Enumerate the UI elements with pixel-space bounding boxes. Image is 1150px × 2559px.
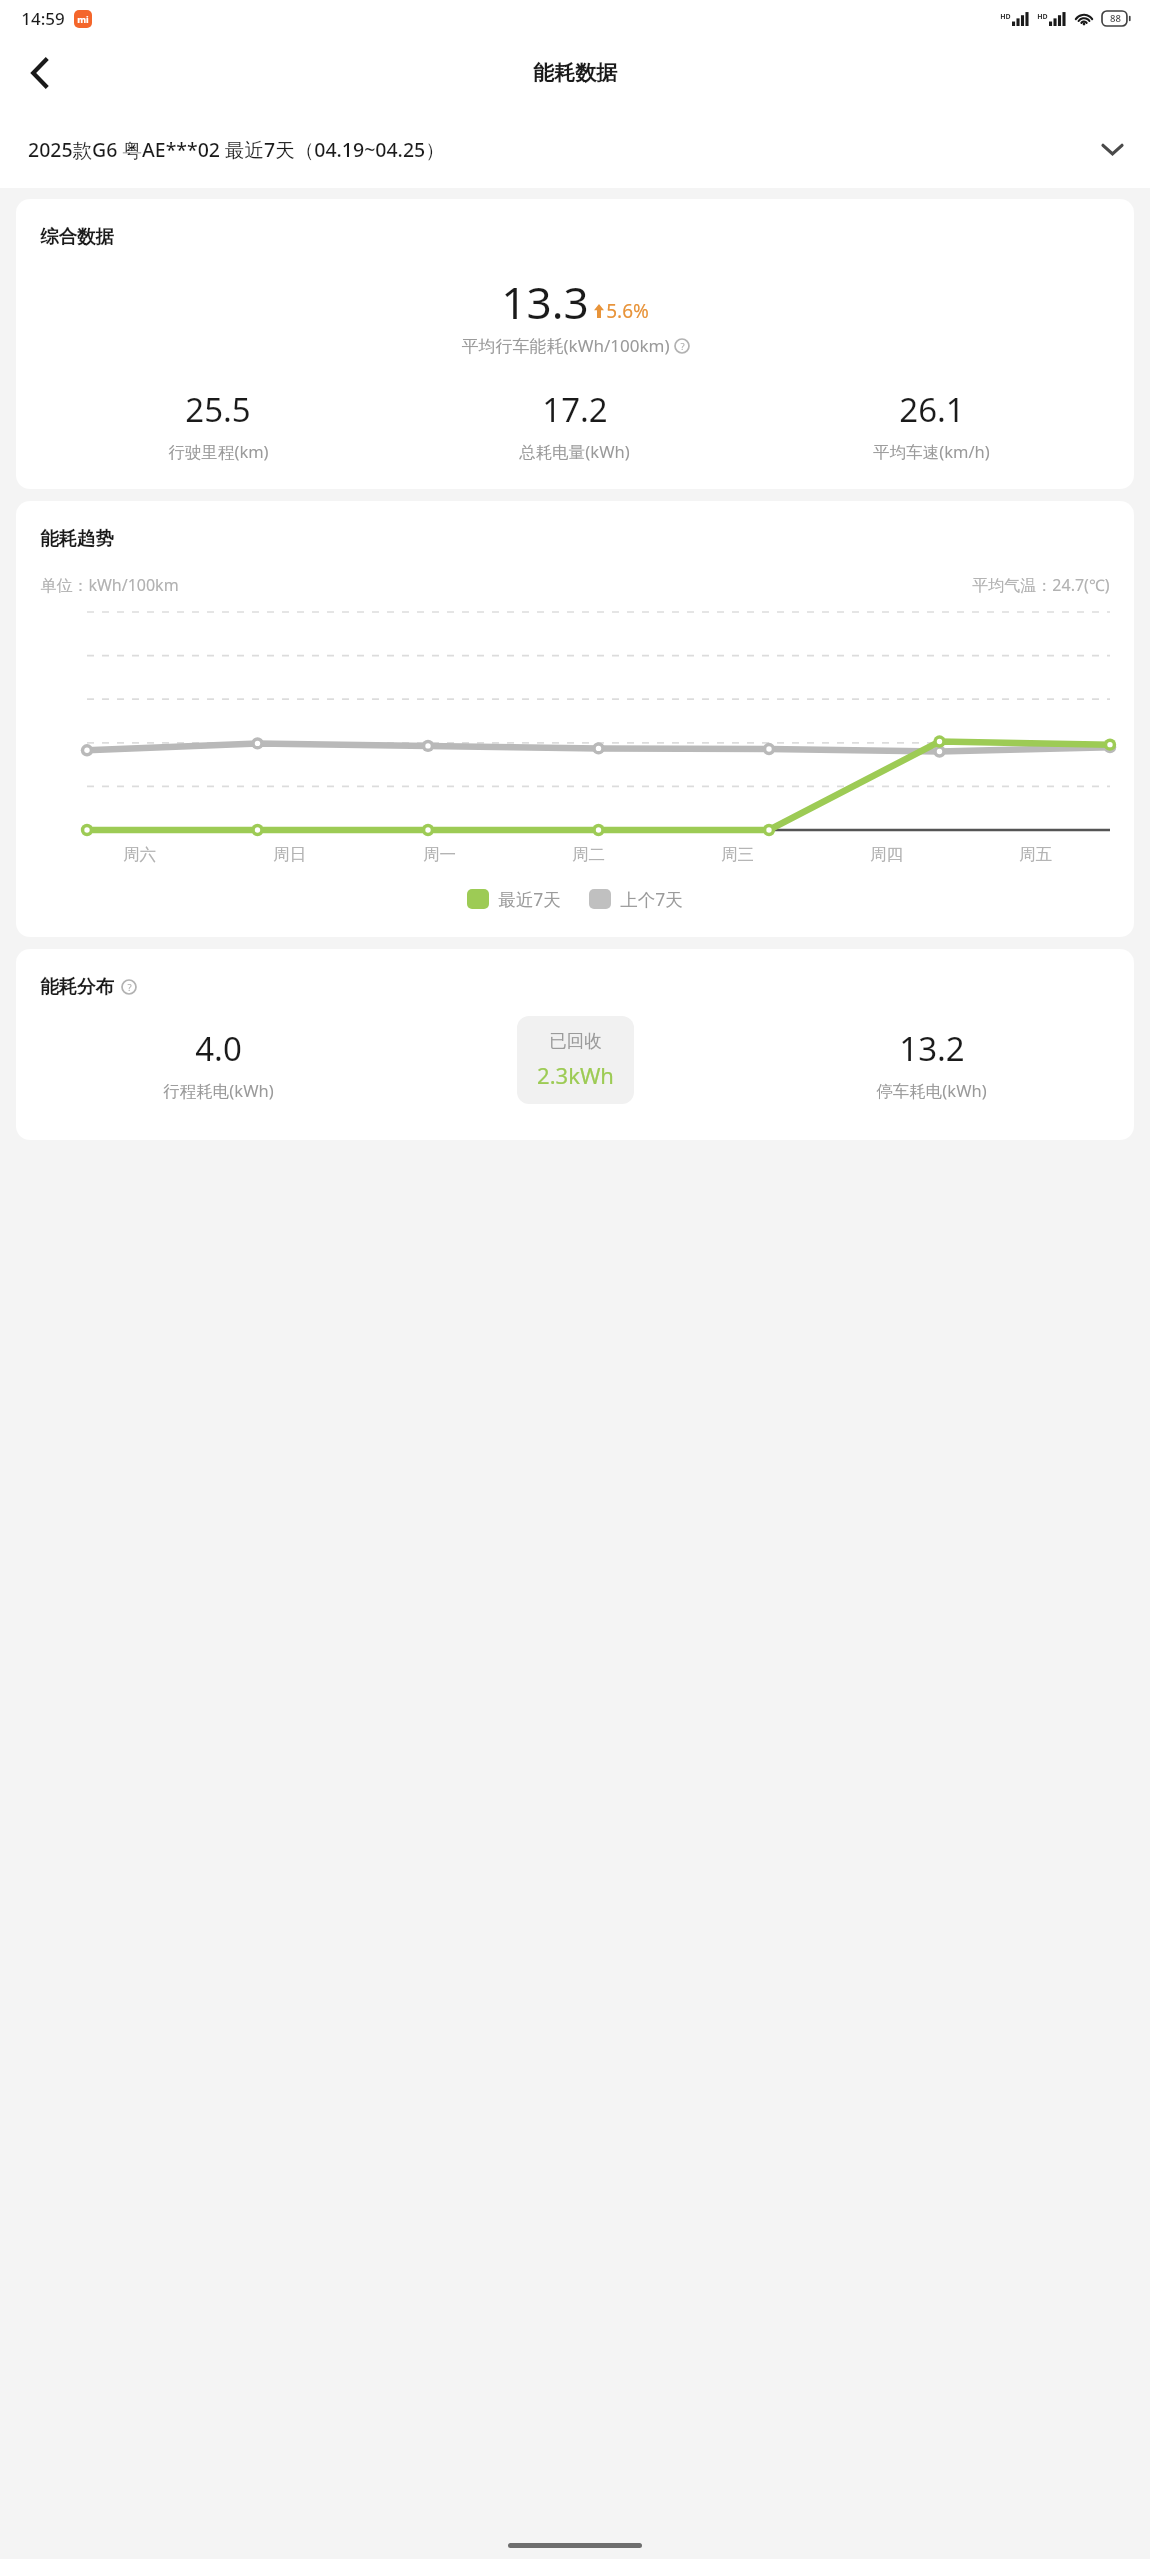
staticText: 能耗分布 [40, 975, 114, 998]
staticText: 13.2 [899, 1026, 965, 1071]
staticText: 周日 [273, 844, 306, 865]
staticText: 26.1 [899, 387, 965, 432]
staticText: 2025款G6 粤AE***02 最近7天（04.19~04.25） [28, 136, 1097, 163]
staticText: 25.5 [185, 387, 251, 432]
staticText: ? [680, 340, 685, 353]
staticText: 平均车速(km/h) [873, 440, 990, 463]
staticText: 5.6% [606, 298, 649, 324]
staticText: HD [1000, 12, 1011, 22]
staticText: mi [77, 13, 89, 25]
staticText: 14:59 [21, 7, 65, 30]
staticText: 周一 [423, 844, 456, 865]
staticText: 已回收 [549, 1030, 602, 1052]
staticText: 17.2 [542, 387, 608, 432]
button[interactable]: 已回收 [517, 1016, 634, 1104]
staticText: HD [1037, 12, 1048, 22]
button[interactable]: 上个7天 [589, 887, 683, 911]
button[interactable]: 2025款G6 粤AE***02 最近7天（04.19~04.25） [0, 110, 1150, 188]
staticText: 能耗趋势 [40, 527, 114, 550]
button[interactable]: 26.1 [753, 387, 1110, 463]
staticText: 周三 [721, 844, 754, 865]
button[interactable]: 4.0 [40, 1026, 396, 1102]
staticText: 周二 [572, 844, 605, 865]
staticText: 总耗电量(kWh) [519, 440, 630, 463]
staticText: 能耗数据 [533, 60, 617, 86]
staticText: 行程耗电(kWh) [163, 1079, 274, 1102]
staticText: ? [127, 981, 132, 994]
staticText: 平均行车能耗(kWh/100km) [461, 334, 670, 357]
staticText: 周四 [870, 844, 903, 865]
staticText: 88 [1110, 12, 1121, 25]
staticText: 单位：kWh/100km [40, 574, 179, 596]
staticText: 周六 [123, 844, 156, 865]
staticText: 2.3kWh [537, 1060, 614, 1090]
button[interactable]: 17.2 [396, 387, 753, 463]
staticText: 上个7天 [620, 887, 683, 911]
staticText: 13.3 [501, 272, 589, 332]
staticText: 行驶里程(km) [168, 440, 269, 463]
staticText: 最近7天 [498, 887, 561, 911]
button[interactable]: 13.2 [753, 1026, 1110, 1102]
staticText: 周五 [1019, 844, 1052, 865]
button[interactable]: 25.5 [40, 387, 396, 463]
staticText: 平均气温：24.7(℃) [972, 574, 1110, 596]
button[interactable]: 最近7天 [467, 887, 561, 911]
staticText: 4.0 [195, 1026, 242, 1071]
button[interactable]: Back [10, 44, 68, 102]
staticText: 停车耗电(kWh) [876, 1079, 987, 1102]
staticText: 综合数据 [40, 225, 114, 248]
